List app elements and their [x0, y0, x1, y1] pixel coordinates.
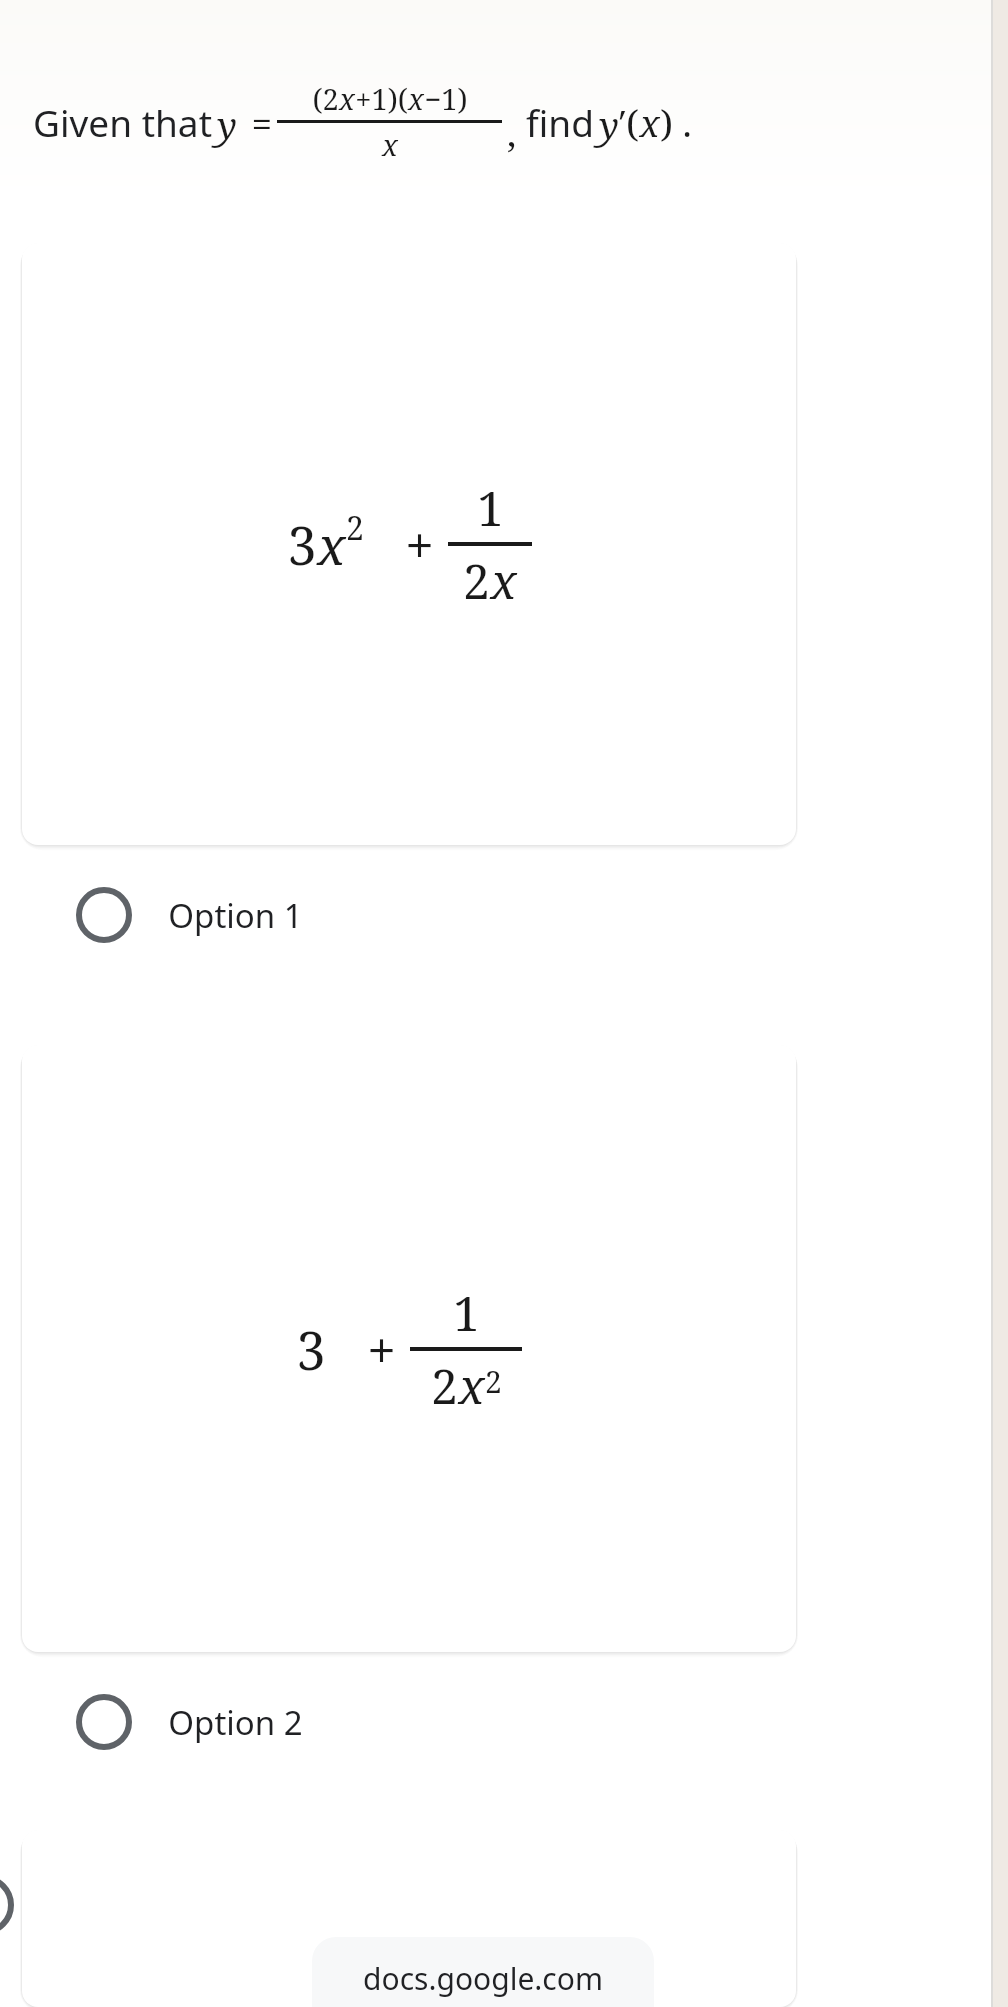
- button[interactable]: 3: [22, 243, 796, 845]
- staticText: 2: [485, 1361, 502, 1402]
- staticText: ) .: [660, 97, 692, 147]
- staticText: +1)(: [355, 79, 408, 118]
- staticText: Given that: [28, 97, 217, 147]
- staticText: 1: [477, 475, 504, 540]
- staticText: 2: [346, 506, 364, 550]
- staticText: +: [326, 1314, 410, 1385]
- staticText: find: [521, 97, 599, 147]
- button[interactable]: docs.google.com: [312, 1937, 654, 2007]
- staticText: ′(: [619, 97, 639, 147]
- staticText: ,: [502, 107, 521, 157]
- staticText: 2: [463, 548, 490, 613]
- staticText: x: [339, 79, 355, 118]
- button[interactable]: [22, 1830, 796, 2007]
- staticText: docs.google.com: [363, 1958, 603, 1999]
- staticText: 2: [431, 1353, 458, 1418]
- staticText: x: [639, 97, 660, 147]
- staticText: Option 2: [168, 1700, 303, 1745]
- button[interactable]: Option 1: [22, 867, 796, 963]
- staticText: x: [317, 509, 346, 580]
- staticText: x: [458, 1353, 485, 1418]
- staticText: y: [599, 99, 619, 149]
- staticText: 3: [296, 1314, 326, 1385]
- button[interactable]: Option 2: [22, 1674, 796, 1770]
- staticText: x: [408, 79, 424, 118]
- staticText: Option 1: [168, 893, 303, 938]
- staticText: +: [364, 509, 448, 580]
- staticText: x: [382, 125, 398, 164]
- other: Option: [0, 1875, 14, 1935]
- staticText: 1: [453, 1280, 480, 1345]
- staticText: =: [237, 97, 277, 147]
- staticText: (2: [312, 79, 339, 118]
- staticText: x: [490, 548, 517, 613]
- staticText: 3: [287, 509, 317, 580]
- staticText: y: [217, 99, 237, 149]
- button[interactable]: 3: [22, 1045, 796, 1652]
- staticText: −1): [424, 79, 468, 118]
